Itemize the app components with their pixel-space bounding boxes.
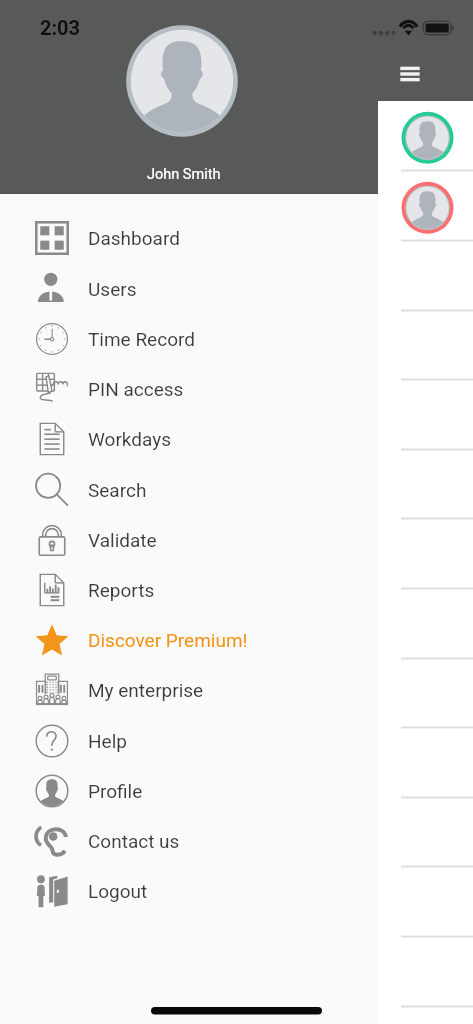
button[interactable]: PIN access (0, 364, 378, 414)
button[interactable]: Discover Premium! (0, 615, 378, 665)
staticText: Reports (88, 579, 155, 601)
button[interactable]: Employee row (378, 657, 473, 726)
button[interactable]: Employee row (378, 240, 473, 309)
button[interactable]: Employee row (378, 1005, 473, 1024)
button[interactable]: Search (0, 465, 378, 515)
button[interactable]: Help (0, 716, 378, 766)
button[interactable]: Contact us (0, 816, 378, 866)
button[interactable]: Employee row (378, 170, 473, 239)
button[interactable]: Employee row (378, 518, 473, 587)
staticText: Logout (88, 880, 148, 902)
button[interactable]: My enterprise (0, 665, 378, 715)
button[interactable]: Logout (0, 866, 378, 916)
staticText: 2:03 (40, 16, 81, 39)
staticText: PIN access (88, 378, 184, 400)
button[interactable]: Employee row (378, 796, 473, 865)
button[interactable]: Validate (0, 515, 378, 565)
staticText: Time Record (88, 328, 195, 350)
staticText: My enterprise (88, 679, 204, 701)
button[interactable]: Employee row (378, 588, 473, 657)
staticText: Workdays (88, 428, 171, 450)
button[interactable]: Employee row (378, 727, 473, 796)
staticText: John Smith (147, 166, 221, 183)
button[interactable]: Menu (393, 57, 427, 91)
button[interactable]: Employee row (378, 866, 473, 935)
button[interactable]: Users (0, 264, 378, 314)
button[interactable]: Employee row (378, 936, 473, 1005)
button[interactable]: Employee row (378, 309, 473, 378)
staticText: Users (88, 278, 137, 300)
staticText: Dashboard (88, 227, 180, 249)
staticText: Help (88, 730, 127, 752)
staticText: Discover Premium! (88, 629, 248, 651)
button[interactable]: Profile (0, 766, 378, 816)
staticText: Profile (88, 780, 143, 802)
button[interactable]: Workdays (0, 414, 378, 464)
button[interactable]: Dashboard (0, 213, 378, 263)
staticText: Validate (88, 529, 157, 551)
button[interactable]: Employee row (378, 100, 473, 169)
button[interactable]: Employee row (378, 448, 473, 517)
staticText: Contact us (88, 830, 180, 852)
staticText: Search (88, 479, 147, 501)
button[interactable]: Reports (0, 565, 378, 615)
button[interactable]: Employee row (378, 379, 473, 448)
button[interactable]: Time Record (0, 314, 378, 364)
